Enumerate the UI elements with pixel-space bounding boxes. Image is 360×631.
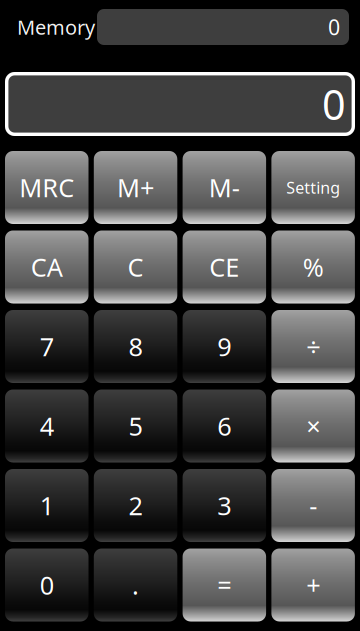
staticText: 0 — [40, 568, 54, 602]
staticText: 7 — [40, 330, 54, 363]
staticText: = — [217, 568, 231, 602]
staticText: - — [309, 489, 317, 522]
button[interactable]: 8 — [94, 310, 177, 383]
staticText: × — [306, 409, 320, 443]
button[interactable]: . — [94, 548, 177, 621]
staticText: + — [306, 568, 320, 602]
staticText: 0 — [328, 13, 340, 41]
staticText: M+ — [117, 171, 154, 204]
staticText: 0 — [322, 77, 346, 131]
button[interactable]: 2 — [94, 469, 177, 542]
staticText: MRC — [19, 171, 74, 204]
button[interactable]: 9 — [183, 310, 266, 383]
button[interactable]: 3 — [183, 469, 266, 542]
staticText: 1 — [40, 489, 54, 522]
button[interactable]: MRC — [5, 151, 88, 224]
button[interactable]: ÷ — [271, 310, 355, 383]
staticText: 3 — [217, 489, 231, 522]
button[interactable]: 1 — [5, 469, 88, 542]
staticText: CE — [209, 250, 239, 284]
button[interactable]: CA — [5, 230, 88, 303]
staticText: 8 — [129, 330, 143, 363]
button[interactable]: × — [271, 389, 355, 462]
button[interactable]: 0 — [5, 548, 88, 621]
staticText: Setting — [286, 177, 340, 198]
staticText: 5 — [129, 409, 143, 443]
button[interactable]: Setting — [271, 151, 355, 224]
button[interactable]: 5 — [94, 389, 177, 462]
staticText: 9 — [217, 330, 231, 363]
button[interactable]: = — [183, 548, 266, 621]
button[interactable]: 6 — [183, 389, 266, 462]
staticText: CA — [31, 250, 63, 284]
staticText: Memory — [17, 14, 95, 40]
staticText: C — [127, 250, 143, 284]
button[interactable]: % — [271, 230, 355, 303]
button[interactable]: M- — [183, 151, 266, 224]
button[interactable]: 4 — [5, 389, 88, 462]
staticText: 2 — [129, 489, 143, 522]
staticText: . — [132, 568, 139, 602]
button[interactable]: CE — [183, 230, 266, 303]
button[interactable]: - — [271, 469, 355, 542]
button[interactable]: C — [94, 230, 177, 303]
staticText: 6 — [217, 409, 231, 443]
staticText: 4 — [40, 409, 54, 443]
button[interactable]: 7 — [5, 310, 88, 383]
staticText: M- — [209, 171, 240, 204]
button[interactable]: + — [271, 548, 355, 621]
button[interactable]: M+ — [94, 151, 177, 224]
staticText: % — [303, 250, 324, 284]
staticText: ÷ — [306, 330, 320, 363]
